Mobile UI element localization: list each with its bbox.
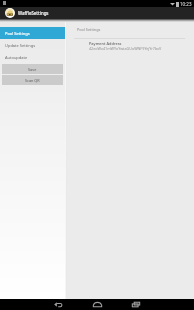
- button[interactable]: Pool Settings: [0, 27, 65, 39]
- button[interactable]: Back: [51, 299, 65, 310]
- staticText: Pool Settings: [5, 31, 30, 36]
- button[interactable]: Scan QR: [2, 75, 63, 85]
- staticText: 42eoWx41mWYoYwtaGUoWNF9YejYr7bxV: [89, 46, 162, 51]
- button[interactable]: Autoupdate: [0, 51, 65, 63]
- staticText: Scan QR: [25, 78, 40, 83]
- button[interactable]: Payment Address: [67, 40, 194, 53]
- button[interactable]: Home: [90, 299, 104, 310]
- staticText: Payment Address: [89, 41, 122, 46]
- staticText: 10:23: [180, 1, 192, 7]
- staticText: Pool Settings: [77, 27, 101, 32]
- staticText: Update Settings: [5, 43, 36, 48]
- staticText: Save: [28, 67, 37, 72]
- staticText: Autoupdate: [5, 55, 28, 60]
- staticText: WaffleSettings: [18, 10, 49, 16]
- button[interactable]: Recents: [129, 299, 143, 310]
- button[interactable]: Update Settings: [0, 39, 65, 51]
- button[interactable]: WaffleSettings: [0, 7, 194, 19]
- button[interactable]: Save: [2, 64, 63, 74]
